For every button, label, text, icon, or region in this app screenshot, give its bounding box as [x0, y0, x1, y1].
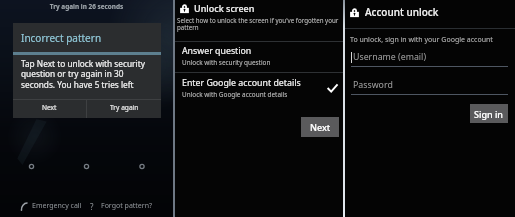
other: Emergency call: [20, 202, 29, 211]
other: Selected: [327, 83, 338, 94]
staticText: Username (email): [353, 51, 427, 63]
button[interactable]: Sign in: [470, 104, 508, 123]
staticText: Unlock with Google account details: [182, 90, 288, 99]
staticText: Unlock screen: [194, 2, 255, 14]
button[interactable]: Try again: [87, 100, 161, 118]
staticText: Incorrect pattern: [21, 31, 102, 45]
staticText: Try again in 26 seconds: [0, 2, 173, 11]
staticText: To unlock, sign in with your Google acco…: [350, 35, 493, 45]
staticText: Answer question: [182, 45, 252, 57]
staticText: Sign in: [474, 108, 504, 120]
staticText: Unlock with security question: [182, 58, 271, 67]
staticText: Enter Google account details: [182, 77, 301, 89]
staticText: Emergency call: [32, 201, 82, 211]
button[interactable]: Next: [301, 117, 339, 137]
staticText: ?: [90, 201, 94, 212]
button[interactable]: Answer question: [175, 42, 343, 72]
staticText: Try again: [110, 103, 139, 112]
staticText: Account unlock: [365, 5, 439, 19]
staticText: Tap Next to unlock with security questio…: [21, 58, 150, 91]
button[interactable]: Next: [13, 100, 86, 118]
staticText: Next: [42, 103, 57, 112]
button[interactable]: Forgot pattern?: [100, 200, 154, 212]
button[interactable]: Enter Google account details: [175, 73, 343, 104]
staticText: Next: [310, 121, 331, 133]
staticText: Select how to unlock the screen if you'v…: [177, 16, 340, 32]
button[interactable]: Emergency call: [19, 200, 83, 212]
staticText: Password: [353, 79, 393, 91]
